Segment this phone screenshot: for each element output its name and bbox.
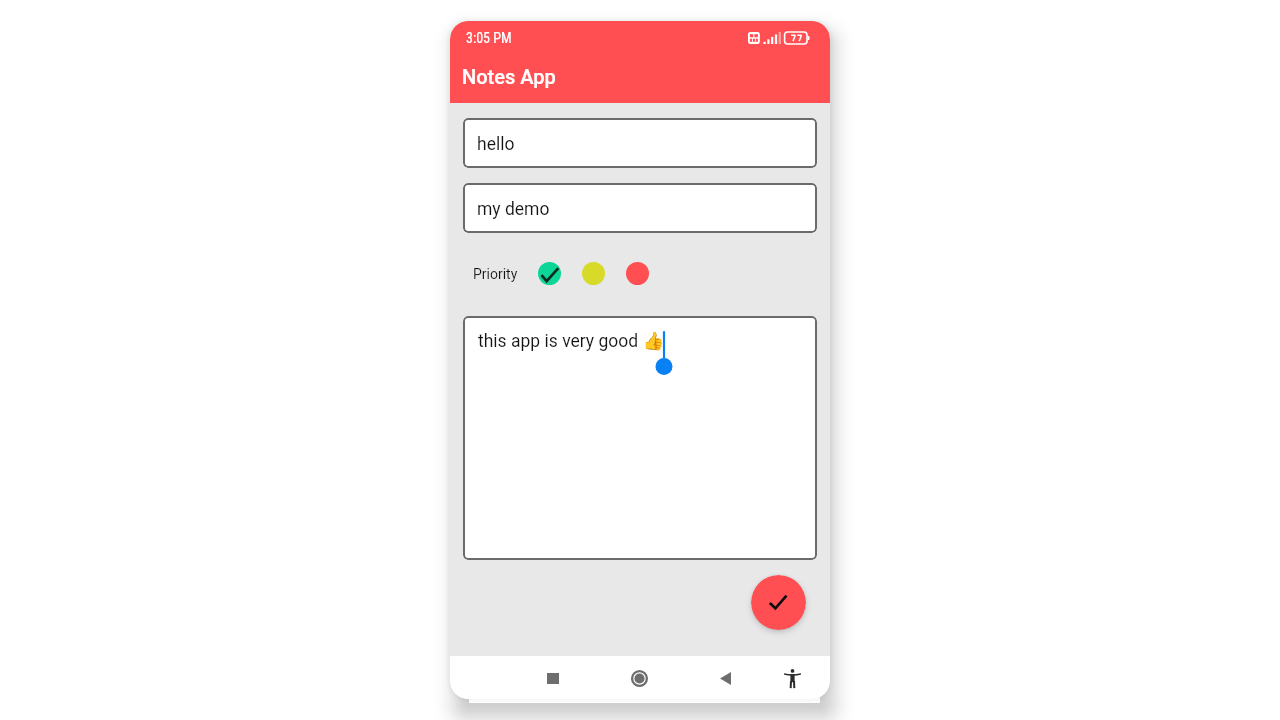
staticText: Notes App (462, 65, 556, 88)
button[interactable]: Recents (532, 657, 574, 699)
staticText: hello (477, 134, 515, 155)
button[interactable]: Back (704, 657, 746, 699)
button[interactable]: this app is very good 👍 (463, 316, 817, 560)
button[interactable]: Priority (626, 262, 649, 285)
staticText: my demo (477, 199, 550, 220)
button[interactable]: Accessibility (771, 657, 813, 699)
button[interactable]: Save note (751, 575, 806, 630)
button[interactable]: Priority (582, 262, 605, 285)
button[interactable]: Home (618, 657, 660, 699)
staticText: this app is very good 👍 (478, 331, 665, 352)
button[interactable]: Priority (538, 262, 561, 285)
button[interactable]: hello (463, 118, 817, 168)
staticText: Priority (473, 266, 518, 282)
staticText: 3:05 PM (466, 30, 512, 46)
button[interactable]: my demo (463, 183, 817, 233)
